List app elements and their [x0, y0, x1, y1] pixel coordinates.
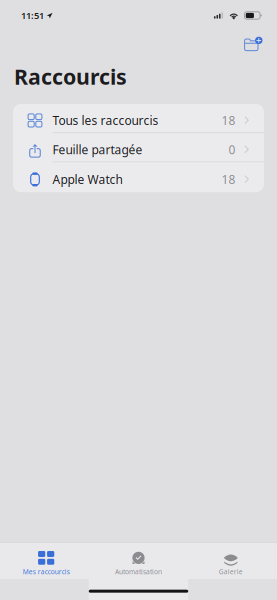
staticText: 0 [229, 142, 236, 157]
staticText: 18 [222, 112, 236, 128]
button[interactable]: Tous les raccourcis [13, 104, 264, 133]
button[interactable]: Nouveau dossier [230, 32, 277, 56]
staticText: Tous les raccourcis [52, 112, 158, 128]
button[interactable]: Galerie [185, 543, 277, 579]
staticText: Galerie [219, 567, 243, 576]
staticText: Feuille partagée [52, 142, 142, 157]
button[interactable]: Apple Watch [13, 162, 264, 192]
button[interactable]: Mes raccourcis [0, 543, 92, 579]
staticText: 18 [222, 171, 236, 187]
button[interactable]: Automatisation [92, 543, 185, 579]
staticText: Apple Watch [52, 171, 122, 187]
staticText: Mes raccourcis [23, 567, 70, 576]
staticText: Raccourcis [14, 62, 127, 91]
staticText: Automatisation [115, 567, 162, 576]
staticText: 11:51 [21, 9, 44, 22]
button[interactable]: Feuille partagée [13, 133, 264, 162]
